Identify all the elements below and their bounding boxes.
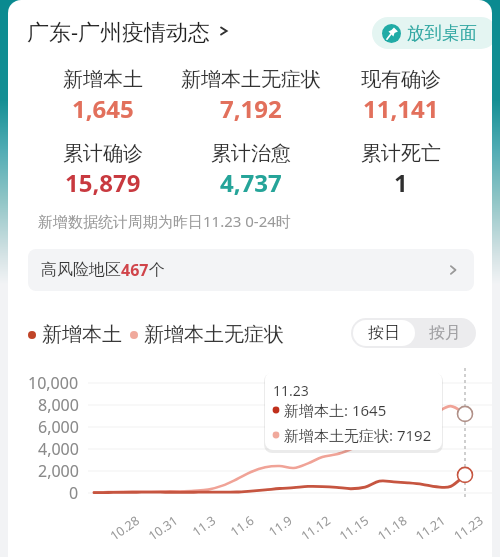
staticText: 按日 — [368, 323, 400, 343]
staticText: 4,737 — [220, 166, 282, 199]
button[interactable]: 放到桌面 — [382, 17, 492, 49]
staticText: 高风险地区 — [41, 260, 121, 280]
staticText: 按月 — [429, 323, 461, 343]
staticText: 7,192 — [220, 92, 282, 125]
staticText: 11,141 — [363, 92, 439, 125]
staticText: 1,645 — [72, 92, 134, 125]
staticText: 个 — [149, 260, 165, 280]
staticText: 467 — [121, 259, 149, 281]
staticText: 新增数据统计周期为昨日11.23 0-24时 — [38, 211, 291, 231]
staticText: 累计确诊 — [63, 141, 143, 166]
button[interactable]: 高风险地区 — [28, 249, 474, 291]
button[interactable]: 广东-广州疫情动态 — [27, 16, 232, 46]
staticText: 1 — [394, 166, 408, 199]
button[interactable]: 按月 — [415, 320, 474, 346]
staticText: 累计死亡 — [361, 141, 441, 166]
staticText: 新增本土 — [42, 322, 122, 347]
button[interactable]: 按日 — [353, 320, 415, 346]
staticText: 放到桌面 — [407, 22, 477, 44]
staticText: 广东-广州疫情动态 — [27, 16, 211, 46]
staticText: 累计治愈 — [211, 141, 291, 166]
staticText: 新增本土无症状 — [181, 67, 321, 92]
staticText: 现有确诊 — [361, 67, 441, 92]
staticText: 新增本土 — [63, 67, 143, 92]
staticText: 新增本土无症状 — [144, 322, 284, 347]
staticText: 15,879 — [65, 166, 141, 199]
